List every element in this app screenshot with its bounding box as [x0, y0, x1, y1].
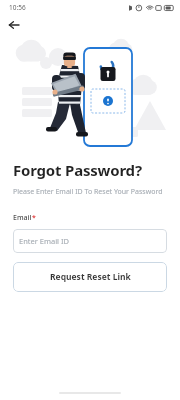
button[interactable]: Back — [4, 15, 24, 35]
staticText: * — [32, 213, 36, 223]
button[interactable]: Enter Email ID — [13, 229, 167, 253]
staticText: Email — [13, 213, 32, 223]
staticText: Enter Email ID — [19, 236, 70, 246]
button[interactable]: Request Reset Link — [13, 262, 167, 292]
staticText: Request Reset Link — [50, 271, 131, 283]
staticText: Forgot Password? — [13, 160, 142, 180]
staticText: 10:56 — [9, 3, 26, 12]
staticText: Please Enter Email ID To Reset Your Pass… — [13, 187, 163, 197]
